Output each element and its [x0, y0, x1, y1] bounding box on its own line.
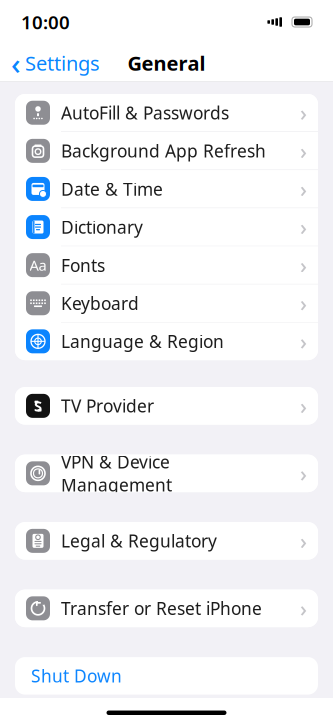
- staticText: VPN & Device Management: [61, 450, 172, 496]
- staticText: Date & Time: [61, 177, 163, 200]
- button[interactable]: Background App Refresh: [15, 132, 318, 170]
- staticText: ›: [300, 251, 307, 279]
- staticText: Language & Region: [61, 330, 224, 353]
- staticText: 10:00: [21, 10, 70, 34]
- button[interactable]: Language & Region: [15, 323, 318, 360]
- staticText: TV Provider: [61, 394, 154, 417]
- staticText: ›: [300, 459, 307, 487]
- staticText: Fonts: [61, 254, 105, 277]
- staticText: Aa: [29, 255, 46, 275]
- staticText: General: [127, 50, 205, 76]
- button[interactable]: Date & Time: [15, 170, 318, 208]
- staticText: Shut Down: [31, 664, 122, 687]
- staticText: ›: [300, 175, 307, 203]
- button[interactable]: Legal & Regulatory: [15, 522, 318, 560]
- button[interactable]: AutoFill & Passwords: [15, 94, 318, 132]
- staticText: ›: [300, 137, 307, 165]
- staticText: ›: [300, 392, 307, 420]
- button[interactable]: Keyboard: [15, 284, 318, 323]
- staticText: ›: [300, 99, 307, 127]
- staticText: Dictionary: [61, 215, 143, 238]
- staticText: Legal & Regulatory: [61, 529, 217, 552]
- button[interactable]: Shut Down: [0, 657, 333, 695]
- staticText: ›: [300, 527, 307, 555]
- staticText: ›: [300, 289, 307, 317]
- staticText: ›: [300, 327, 307, 355]
- staticText: Settings: [25, 50, 100, 76]
- staticText: Transfer or Reset iPhone: [61, 597, 262, 620]
- button[interactable]: VPN & Device Management: [15, 455, 318, 492]
- staticText: ‹: [11, 43, 21, 82]
- staticText: Keyboard: [61, 292, 139, 315]
- button[interactable]: ‹: [0, 44, 111, 82]
- staticText: ›: [300, 594, 307, 622]
- staticText: ›: [300, 213, 307, 241]
- button[interactable]: S: [15, 387, 318, 425]
- staticText: S: [34, 396, 42, 416]
- button[interactable]: Transfer or Reset iPhone: [15, 590, 318, 627]
- button[interactable]: Aa: [15, 246, 318, 284]
- staticText: AutoFill & Passwords: [61, 101, 229, 124]
- button[interactable]: Dictionary: [15, 208, 318, 246]
- staticText: Background App Refresh: [61, 139, 266, 162]
